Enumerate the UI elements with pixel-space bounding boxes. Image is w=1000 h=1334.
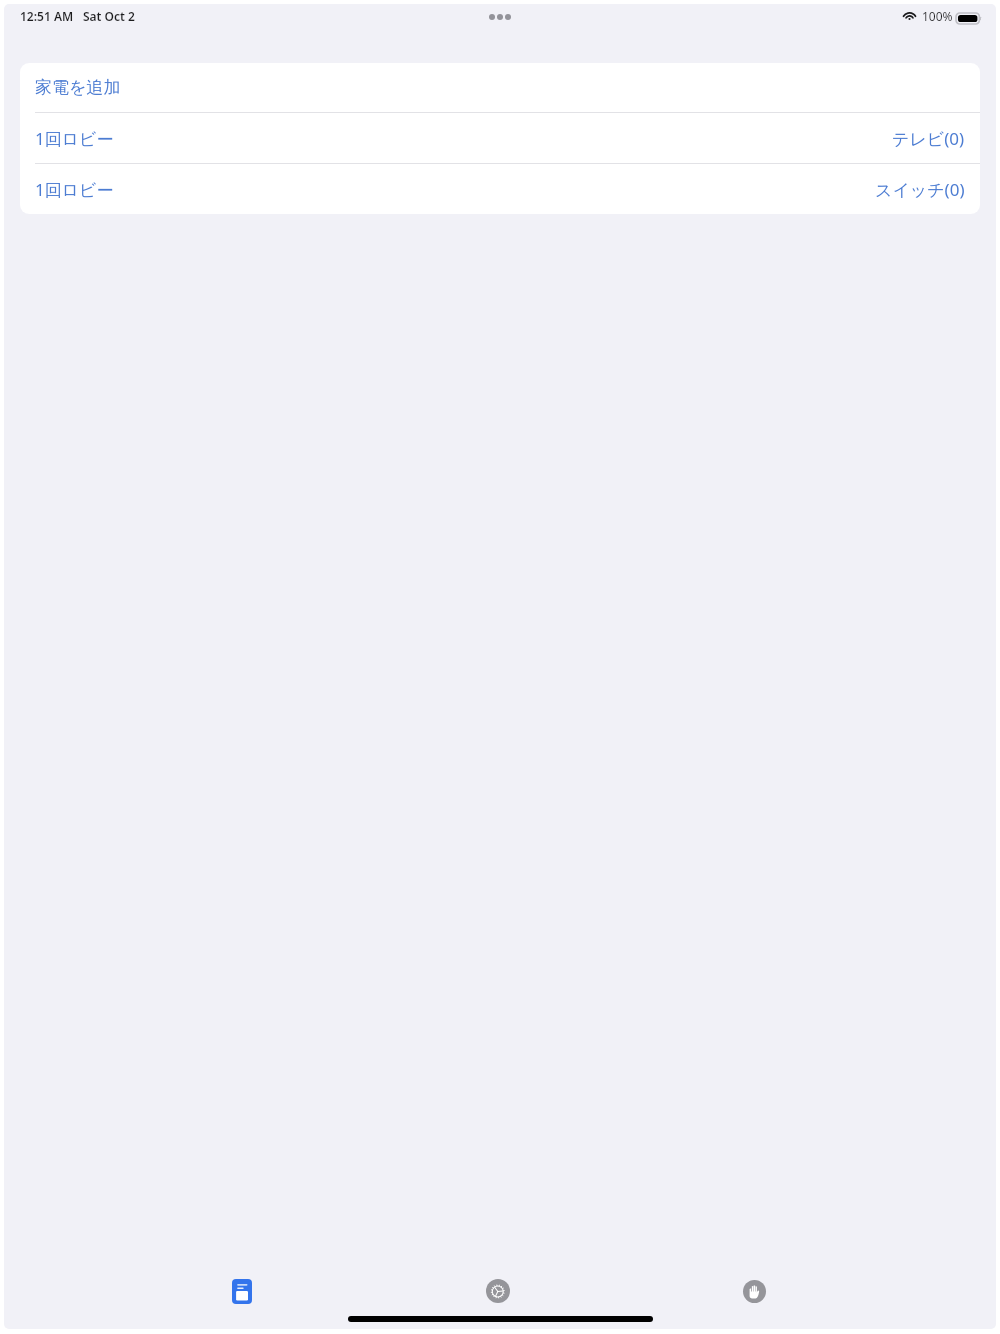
button[interactable]: 1回ロビー (20, 164, 980, 214)
staticText: 100% (922, 8, 953, 24)
staticText: テレビ(0) (892, 127, 965, 150)
staticText: 1回ロビー (35, 178, 114, 201)
staticText: 1回ロビー (35, 127, 114, 150)
button[interactable]: 1回ロビー (20, 113, 980, 163)
staticText: Sat Oct 2 (83, 8, 135, 24)
staticText: 12:51 AM (20, 8, 74, 24)
button[interactable]: Settings (470, 1273, 526, 1309)
button[interactable]: 家電を追加 (20, 63, 980, 112)
staticText: スイッチ(0) (875, 178, 965, 201)
button[interactable]: Accessibility (726, 1273, 782, 1309)
staticText: 家電を追加 (35, 77, 121, 98)
button[interactable]: Articles (214, 1273, 270, 1309)
